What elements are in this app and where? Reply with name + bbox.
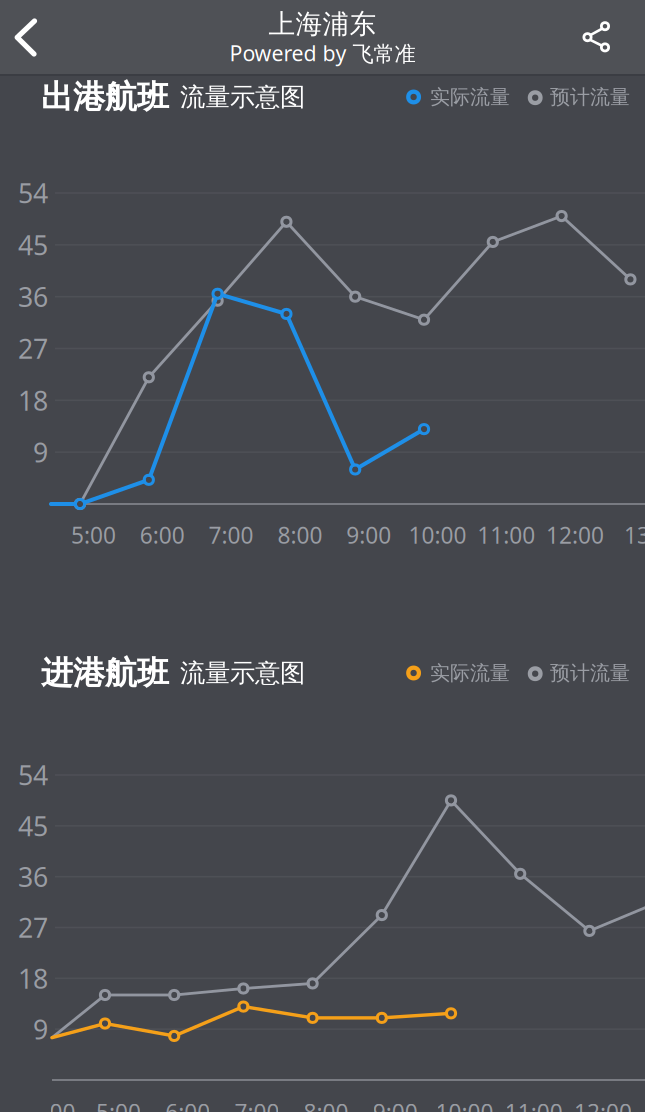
- staticText: 5:00: [71, 520, 116, 550]
- staticText: 10:00: [408, 520, 466, 550]
- staticText: 流量示意图: [180, 657, 305, 688]
- staticText: 8:00: [277, 520, 322, 550]
- staticText: 实际流量: [430, 85, 510, 109]
- staticText: 5:00: [96, 1097, 141, 1112]
- staticText: 45: [18, 227, 48, 262]
- staticText: 36: [18, 859, 48, 894]
- staticText: 18: [18, 961, 48, 996]
- staticText: 9:00: [346, 520, 391, 550]
- staticText: 9:00: [373, 1097, 418, 1112]
- staticText: 进港航班: [41, 653, 169, 693]
- staticText: 7:00: [209, 520, 254, 550]
- button[interactable]: Back: [0, 0, 66, 75]
- staticText: 00: [49, 1097, 75, 1112]
- staticText: Powered by 飞常准: [229, 39, 415, 67]
- staticText: 9: [33, 1011, 48, 1047]
- button[interactable]: Share: [553, 0, 625, 75]
- staticText: 11:00: [505, 1097, 563, 1112]
- staticText: 出港航班: [41, 77, 169, 117]
- staticText: 7:00: [234, 1097, 279, 1112]
- staticText: 上海浦东: [268, 8, 376, 40]
- staticText: 流量示意图: [180, 81, 305, 112]
- staticText: 18: [18, 383, 48, 418]
- staticText: 12:00: [574, 1097, 632, 1112]
- staticText: 27: [18, 331, 48, 366]
- staticText: 预计流量: [550, 85, 630, 109]
- staticText: 9: [33, 434, 48, 470]
- staticText: 6:00: [165, 1097, 210, 1112]
- staticText: 实际流量: [430, 661, 510, 685]
- staticText: 6:00: [140, 520, 185, 550]
- staticText: 13: [624, 520, 645, 550]
- staticText: 45: [18, 808, 48, 843]
- staticText: 54: [18, 757, 48, 793]
- staticText: 27: [18, 910, 48, 945]
- staticText: 11:00: [477, 520, 535, 550]
- staticText: 8:00: [304, 1097, 349, 1112]
- staticText: 12:00: [546, 520, 604, 550]
- staticText: 10:00: [435, 1097, 493, 1112]
- staticText: 54: [18, 175, 48, 211]
- staticText: 预计流量: [550, 661, 630, 685]
- staticText: 36: [18, 279, 48, 314]
